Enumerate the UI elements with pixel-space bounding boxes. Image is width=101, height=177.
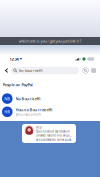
button[interactable]: fez bourriteffi <box>11 67 79 74</box>
staticText: Hey! <box>36 126 42 129</box>
staticText: No Bouriteffi <box>15 96 40 101</box>
button[interactable]: Scan <box>83 68 88 73</box>
button[interactable]: HB <box>0 105 100 118</box>
staticText: which one is you i got you just link it … <box>18 38 81 44</box>
staticText: @hounabourriteffi <box>15 113 41 116</box>
button[interactable]: NB <box>0 92 100 105</box>
staticText: ex ea commodo consequat. <box>36 138 72 141</box>
staticText: 12:34 <box>10 56 19 62</box>
staticText: NB <box>4 96 10 101</box>
button[interactable]: Back <box>2 66 11 75</box>
staticText: Quis nostrud exercitation <box>36 130 70 133</box>
button[interactable]: More <box>91 68 96 73</box>
staticText: HB <box>4 109 10 114</box>
staticText: ullamco laboris nisi aliquip <box>36 134 72 137</box>
staticText: Houna Bourriateffi <box>15 107 52 112</box>
staticText: fez bourriteffi <box>19 68 43 73</box>
staticText: People on PayPal <box>3 82 33 87</box>
